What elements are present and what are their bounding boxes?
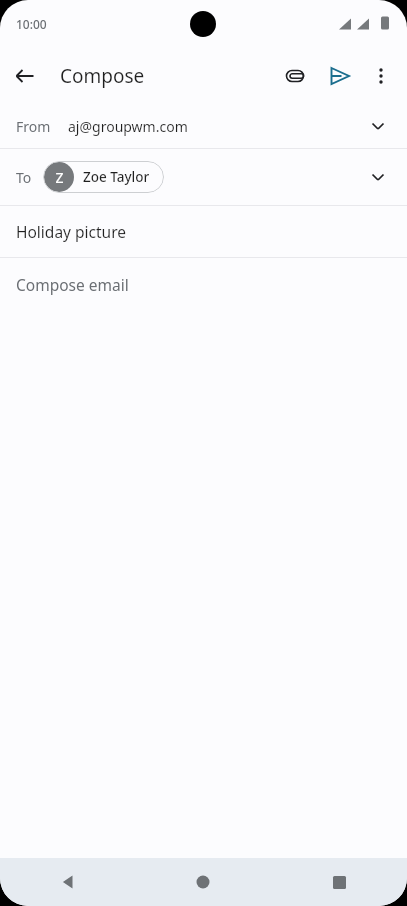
button[interactable]: Home xyxy=(135,858,271,906)
staticText: Z xyxy=(55,168,64,187)
button[interactable]: Compose email xyxy=(0,258,407,310)
staticText: Zoe Taylor xyxy=(83,168,150,186)
button[interactable]: Expand xyxy=(363,162,393,192)
button[interactable]: Z xyxy=(43,161,164,193)
staticText: Compose email xyxy=(16,274,129,295)
button[interactable]: Send xyxy=(320,56,360,96)
button[interactable]: Expand xyxy=(363,111,393,141)
button[interactable]: More options xyxy=(361,56,401,96)
staticText: 10:00 xyxy=(16,16,47,32)
button[interactable]: Back xyxy=(9,60,41,92)
staticText: To xyxy=(16,168,32,187)
button[interactable]: From xyxy=(0,104,407,148)
button[interactable]: To xyxy=(0,149,407,205)
button[interactable]: Holiday picture xyxy=(0,206,407,257)
staticText: aj@groupwm.com xyxy=(68,117,188,136)
staticText: From xyxy=(16,117,51,136)
button[interactable]: Back xyxy=(0,858,135,906)
button[interactable]: Attach file xyxy=(275,56,315,96)
button[interactable]: Recent apps xyxy=(271,858,407,906)
staticText: Compose xyxy=(60,63,145,89)
staticText: Holiday picture xyxy=(16,221,127,242)
